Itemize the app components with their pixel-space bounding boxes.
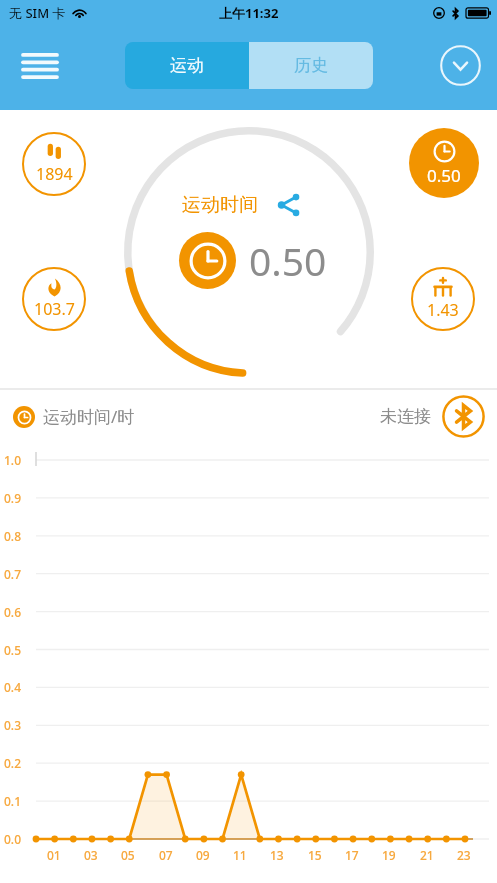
staticText: 15 <box>308 847 322 863</box>
button[interactable]: Expand <box>436 41 484 89</box>
staticText: 0.2 <box>4 755 21 771</box>
staticText: 23 <box>457 847 471 863</box>
staticText: 07 <box>159 847 173 863</box>
button[interactable]: Distance 1.43 <box>411 267 475 331</box>
staticText: 运动 <box>170 55 204 76</box>
staticText: 0.4 <box>4 679 21 695</box>
staticText: 0.1 <box>4 793 21 809</box>
button[interactable]: Bluetooth not connected <box>440 393 486 439</box>
staticText: 历史 <box>294 55 328 76</box>
staticText: 103.7 <box>34 298 75 320</box>
staticText: 03 <box>84 847 98 863</box>
staticText: 21 <box>420 847 434 863</box>
staticText: 0.0 <box>4 831 21 847</box>
staticText: 运动时间/时 <box>43 405 135 428</box>
staticText: 0.50 <box>427 164 461 187</box>
button[interactable]: 运动 <box>125 42 249 89</box>
staticText: 未连接 <box>380 406 431 427</box>
button[interactable]: 历史 <box>249 42 373 89</box>
button[interactable]: Active time 0.50 <box>409 128 479 198</box>
staticText: 运动时间 <box>182 193 258 217</box>
staticText: 0.6 <box>4 604 21 620</box>
staticText: 1894 <box>36 163 73 185</box>
staticText: 0.50 <box>249 234 327 287</box>
staticText: 无 SIM 卡 <box>9 4 66 22</box>
staticText: 1.0 <box>4 452 21 468</box>
staticText: 05 <box>121 847 135 863</box>
button[interactable]: Share <box>274 190 304 220</box>
staticText: 0.5 <box>4 642 21 658</box>
staticText: 13 <box>270 847 284 863</box>
staticText: 0.8 <box>4 528 21 544</box>
button[interactable]: Calories 103.7 <box>22 267 86 331</box>
staticText: 11 <box>233 847 247 863</box>
staticText: 1.43 <box>427 299 459 321</box>
staticText: 01 <box>47 847 61 863</box>
staticText: 0.9 <box>4 490 21 506</box>
button[interactable]: Steps 1894 <box>22 132 86 196</box>
staticText: 19 <box>382 847 396 863</box>
staticText: 0.3 <box>4 717 21 733</box>
staticText: 上午11:32 <box>219 4 279 22</box>
staticText: 0.7 <box>4 566 21 582</box>
staticText: 17 <box>345 847 359 863</box>
button[interactable]: Menu <box>12 38 68 94</box>
staticText: 09 <box>196 847 210 863</box>
